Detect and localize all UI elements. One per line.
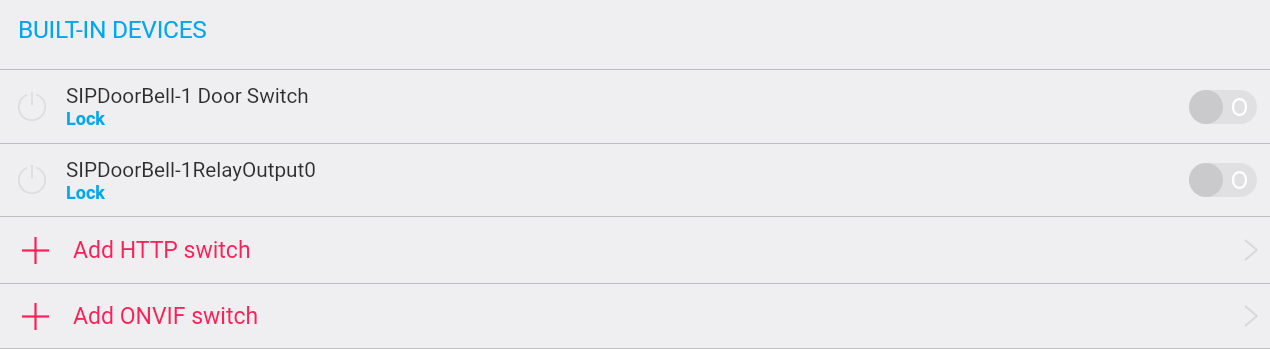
button[interactable]: Toggle switch, off bbox=[1189, 90, 1257, 124]
button[interactable]: Add ONVIF switch bbox=[0, 284, 1270, 348]
staticText: SIPDoorBell-1RelayOutput0 bbox=[66, 158, 316, 182]
other: Power bbox=[16, 164, 48, 196]
button[interactable]: Power bbox=[0, 144, 1270, 216]
staticText: SIPDoorBell-1 Door Switch bbox=[66, 84, 309, 108]
staticText: Add ONVIF switch bbox=[73, 303, 1244, 330]
staticText: Add HTTP switch bbox=[73, 237, 1244, 264]
staticText: BUILT-IN DEVICES bbox=[18, 15, 207, 44]
staticText: Lock bbox=[66, 108, 105, 129]
button[interactable]: Add HTTP switch bbox=[0, 217, 1270, 283]
button[interactable]: Toggle switch, off bbox=[1189, 163, 1257, 197]
staticText: Lock bbox=[66, 182, 105, 203]
other: Power bbox=[16, 91, 48, 123]
button[interactable]: Power bbox=[0, 70, 1270, 143]
